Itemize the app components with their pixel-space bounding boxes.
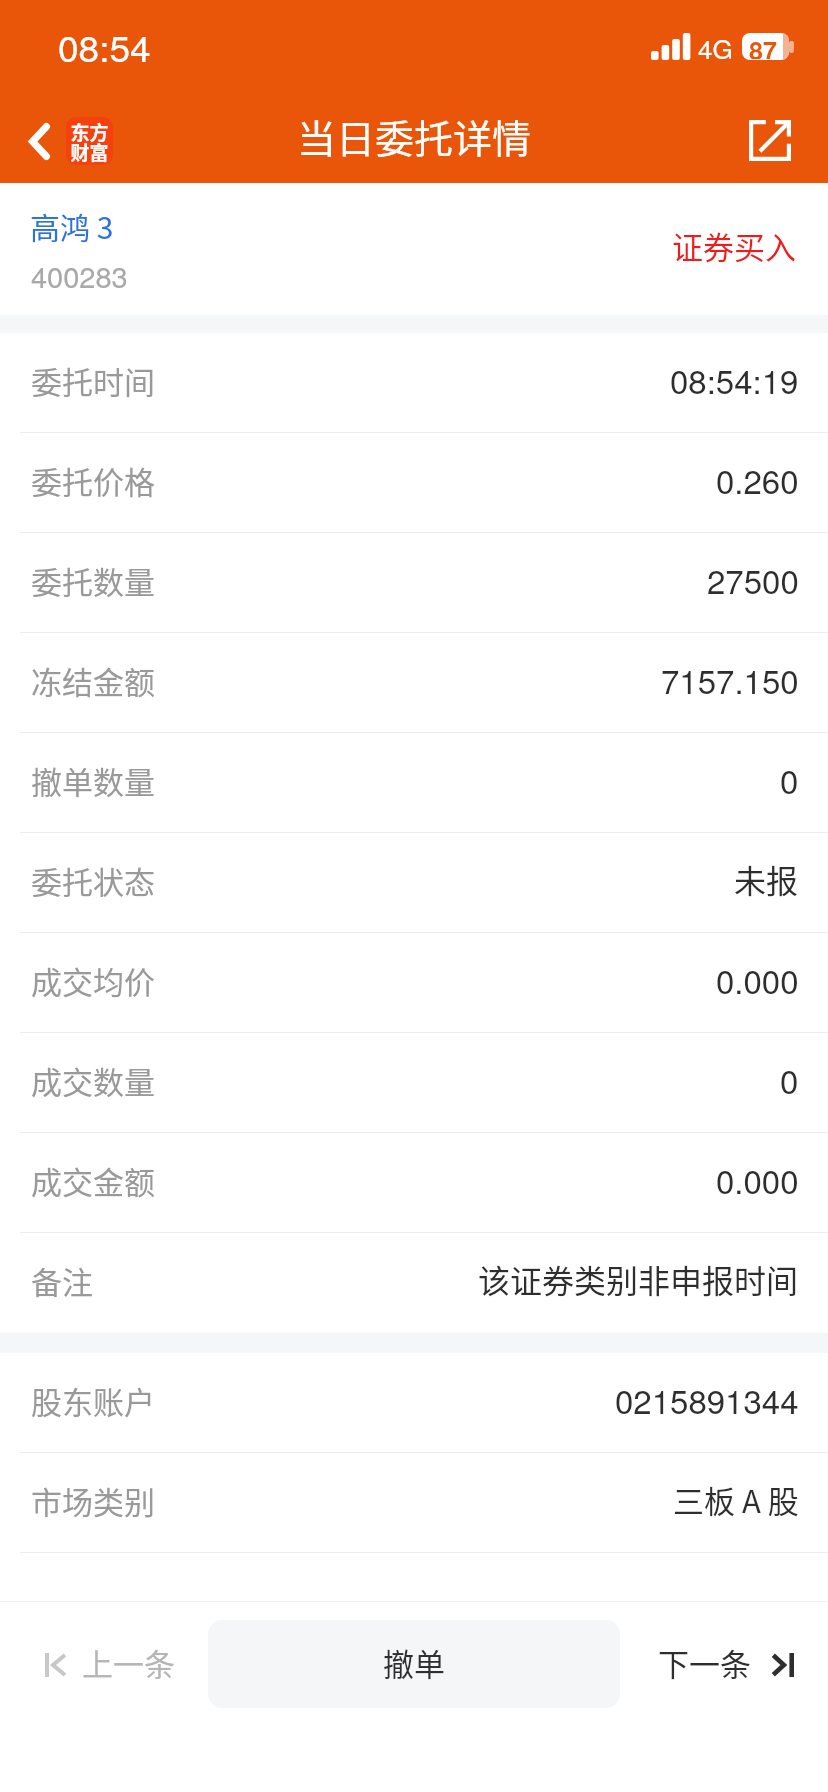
staticText: 委托时间	[31, 358, 155, 403]
button[interactable]: 委托状态	[0, 833, 828, 933]
staticText: 08:54:19	[670, 356, 799, 403]
staticText: 成交金额	[31, 1158, 155, 1203]
button[interactable]: Back	[0, 107, 129, 175]
staticText: 撤单	[383, 1640, 445, 1685]
button[interactable]: 下一条	[620, 1602, 828, 1727]
staticText: 证券买入	[672, 223, 796, 268]
staticText: 当日委托详情	[297, 108, 532, 164]
staticText: 7157.150	[661, 656, 799, 703]
button[interactable]: 股东账户	[0, 1353, 828, 1453]
button[interactable]: 成交金额	[0, 1133, 828, 1233]
staticText: 委托数量	[31, 558, 155, 603]
staticText: 27500	[707, 556, 799, 603]
staticText: 0.260	[716, 456, 799, 503]
button[interactable]: 撤单	[208, 1620, 620, 1708]
staticText: 市场类别	[31, 1478, 155, 1523]
staticText: 备注	[31, 1258, 93, 1303]
staticText: 该证券类别非申报时间	[478, 1256, 799, 1302]
staticText: 08:54	[58, 20, 151, 73]
staticText: 0215891344	[615, 1376, 799, 1423]
button[interactable]: 冻结金额	[0, 633, 828, 733]
button[interactable]: 备注	[0, 1233, 828, 1333]
staticText: 87	[749, 33, 777, 59]
button[interactable]: Share	[719, 93, 828, 183]
button[interactable]: 委托数量	[0, 533, 828, 633]
staticText: 股东账户	[31, 1378, 155, 1423]
staticText: 成交数量	[31, 1058, 155, 1103]
staticText: 0	[780, 1056, 799, 1103]
staticText: 撤单数量	[31, 758, 155, 803]
staticText: 委托价格	[31, 458, 155, 503]
button[interactable]: 委托时间	[0, 333, 828, 433]
button[interactable]: 成交数量	[0, 1033, 828, 1133]
button[interactable]: 成交均价	[0, 933, 828, 1033]
button[interactable]: 市场类别	[0, 1453, 828, 1553]
staticText: 4G	[698, 29, 733, 66]
staticText: 未报	[734, 856, 799, 902]
staticText: 三板 A 股	[673, 1477, 799, 1522]
staticText: 0	[780, 756, 799, 803]
button[interactable]: 委托价格	[0, 433, 828, 533]
staticText: 下一条	[658, 1640, 751, 1685]
staticText: 0.000	[716, 1156, 799, 1203]
staticText: 东方 财富	[70, 118, 109, 165]
button[interactable]: 上一条	[0, 1602, 208, 1727]
staticText: 400283	[31, 255, 128, 297]
staticText: 上一条	[82, 1640, 175, 1685]
staticText: 委托状态	[31, 858, 155, 903]
staticText: 冻结金额	[31, 658, 155, 703]
staticText: 高鸿 3	[30, 204, 114, 247]
staticText: 成交均价	[31, 958, 155, 1003]
staticText: 0.000	[716, 956, 799, 1003]
button[interactable]: 撤单数量	[0, 733, 828, 833]
